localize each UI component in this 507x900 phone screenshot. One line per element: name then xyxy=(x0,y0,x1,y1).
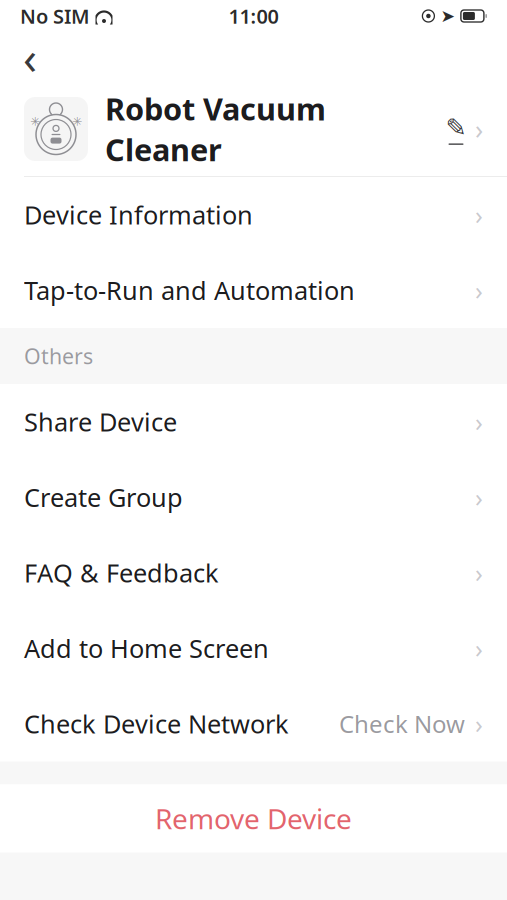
staticText: Tap-to-Run and Automation xyxy=(24,273,355,307)
staticText: Device Information xyxy=(24,198,253,231)
staticText: ✎ xyxy=(445,113,466,142)
staticText: › xyxy=(475,631,483,665)
button[interactable]: Add to Home Screen xyxy=(0,610,507,686)
staticText: Others xyxy=(24,342,93,370)
staticText: Create Group xyxy=(24,480,183,514)
button[interactable]: FAQ & Feedback xyxy=(0,535,507,610)
staticText: FAQ & Feedback xyxy=(24,556,219,589)
staticText: ‹ xyxy=(23,27,37,87)
button[interactable]: Share Device xyxy=(0,384,507,459)
staticText: › xyxy=(475,707,483,740)
staticText: › xyxy=(475,198,483,231)
staticText: No SIM xyxy=(20,3,90,29)
button[interactable]: Back xyxy=(8,35,52,79)
staticText: ✳ xyxy=(72,115,82,128)
staticText: › xyxy=(475,556,483,589)
button[interactable]: Device Information xyxy=(0,177,507,252)
staticText: › xyxy=(475,273,483,307)
staticText: › xyxy=(475,111,483,147)
button[interactable]: ✳ xyxy=(0,82,507,176)
button[interactable]: Tap-to-Run and Automation xyxy=(0,252,507,328)
staticText: Check Device Network xyxy=(24,707,289,740)
staticText: ➤ xyxy=(440,6,455,26)
staticText: ✳ xyxy=(30,115,40,128)
staticText: › xyxy=(475,405,483,438)
button[interactable]: Create Group xyxy=(0,459,507,535)
staticText: Share Device xyxy=(24,405,177,438)
staticText: Add to Home Screen xyxy=(24,631,269,665)
staticText: › xyxy=(475,480,483,514)
staticText: Remove Device xyxy=(155,800,352,837)
staticText: Check Now xyxy=(339,708,465,740)
staticText: 11:00 xyxy=(228,3,278,29)
button[interactable]: Remove Device xyxy=(0,784,507,852)
button[interactable]: Check Device Network xyxy=(0,686,507,761)
staticText: Robot Vacuum Cleaner xyxy=(105,88,326,170)
